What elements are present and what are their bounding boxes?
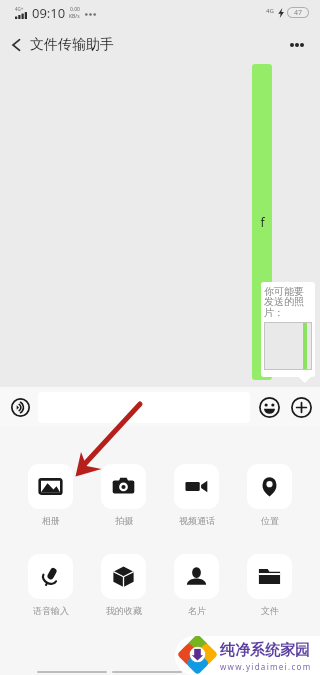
button[interactable]: 视频通话 bbox=[174, 464, 219, 526]
other: Back bbox=[11, 38, 22, 52]
staticText: www.yidaimei.com bbox=[220, 661, 312, 672]
staticText: 0.00 bbox=[70, 6, 80, 13]
staticText: 拍摄 bbox=[115, 515, 133, 526]
button[interactable]: Recents bbox=[187, 671, 257, 673]
staticText: 09:10 bbox=[32, 4, 66, 22]
staticText: f bbox=[260, 214, 265, 230]
staticText: 文件传输助手 bbox=[30, 36, 114, 54]
staticText: 纯净系统家园 bbox=[220, 641, 310, 660]
staticText: 语音输入 bbox=[33, 605, 69, 616]
button[interactable]: 相册 bbox=[28, 464, 73, 526]
button[interactable]: More bbox=[282, 30, 312, 59]
staticText: 位置 bbox=[261, 515, 279, 526]
button[interactable]: 语音输入 bbox=[28, 554, 73, 616]
button[interactable]: 拍摄 bbox=[101, 464, 146, 526]
button[interactable]: 文件 bbox=[247, 554, 292, 616]
staticText: 相册 bbox=[42, 515, 60, 526]
button[interactable]: Back bbox=[0, 25, 120, 59]
button[interactable]: Emoji bbox=[254, 392, 284, 422]
staticText: 视频通话 bbox=[179, 515, 215, 526]
button[interactable]: 我的收藏 bbox=[101, 554, 146, 616]
staticText: 文件 bbox=[261, 605, 279, 616]
button[interactable]: 名片 bbox=[174, 554, 219, 616]
staticText: 你可能要发送的照片： bbox=[264, 285, 305, 319]
staticText: 名片 bbox=[188, 605, 206, 616]
button[interactable]: Voice input bbox=[5, 392, 35, 422]
button[interactable]: More functions bbox=[286, 392, 316, 422]
staticText: 我的收藏 bbox=[106, 605, 142, 616]
button[interactable] bbox=[38, 392, 250, 423]
staticText: 47 bbox=[294, 8, 303, 17]
staticText: KB/s bbox=[69, 13, 80, 20]
button[interactable]: 位置 bbox=[247, 464, 292, 526]
staticText: 4G+ bbox=[15, 6, 24, 12]
staticText: 4G bbox=[266, 7, 274, 15]
